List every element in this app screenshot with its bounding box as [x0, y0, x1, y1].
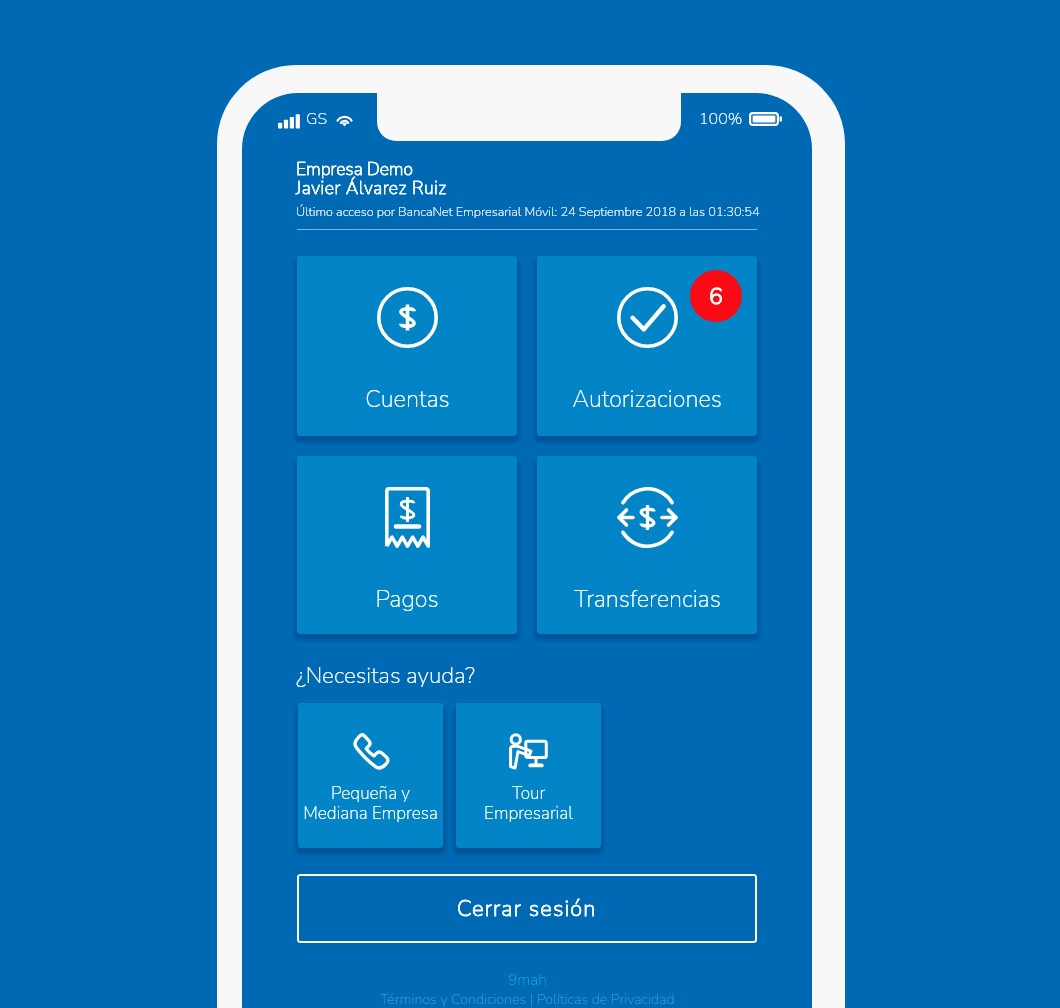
other: Tour Empresarial — [510, 734, 547, 769]
staticText: Pagos — [375, 583, 439, 615]
staticText: 6 — [709, 281, 723, 312]
other: Llamar — [353, 734, 389, 770]
staticText: Empresa Demo — [296, 157, 413, 181]
staticText: Pequeña y Mediana Empresa — [298, 782, 443, 826]
staticText: 9mah — [508, 969, 547, 990]
staticText: Cerrar sesión — [457, 894, 597, 924]
button[interactable]: Llamar — [298, 703, 443, 848]
staticText: 6 — [709, 281, 723, 312]
other: Pagos — [385, 487, 430, 548]
button[interactable]: Transferencias — [537, 456, 757, 634]
button[interactable]: Cerrar sesión — [297, 874, 757, 943]
button[interactable]: Pagos — [297, 456, 517, 634]
button[interactable]: Cuentas — [297, 256, 517, 436]
other: Cuentas — [377, 287, 438, 348]
other: Autorizaciones — [617, 287, 678, 348]
staticText: Autorizaciones — [572, 383, 722, 415]
staticText: Transferencias — [574, 583, 721, 615]
staticText: GS — [306, 108, 328, 130]
staticText: Javier Álvarez Ruiz — [296, 176, 447, 200]
staticText: Tour Empresarial — [456, 782, 601, 826]
staticText: Empresa Demo — [296, 157, 413, 181]
other: Transferencias — [617, 487, 678, 548]
button[interactable]: Tour Empresarial — [456, 703, 601, 848]
button[interactable]: Autorizaciones — [537, 256, 757, 436]
staticText: 100% — [699, 108, 743, 130]
staticText: Términos y Condiciones | Políticas de Pr… — [380, 990, 675, 1008]
button[interactable]: 6 autorizaciones pendientes — [690, 270, 742, 322]
staticText: Último acceso por BancaNet Empresarial M… — [296, 203, 760, 220]
staticText: Cuentas — [365, 383, 450, 415]
staticText: Javier Álvarez Ruiz — [296, 176, 447, 200]
staticText: Cerrar sesión — [457, 894, 597, 924]
staticText: ¿Necesitas ayuda? — [296, 660, 475, 691]
